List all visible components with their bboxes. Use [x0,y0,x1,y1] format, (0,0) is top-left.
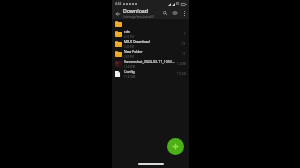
button[interactable]: MIUI Download [112,39,189,49]
staticText: 12:04 PM [124,65,136,69]
staticText: 4:52 [115,2,122,6]
staticText: 19 [182,42,186,46]
button[interactable]: Config [112,69,189,79]
staticText: 2:05 PM [124,55,134,59]
staticText: 3 [184,32,186,36]
button[interactable]: Back [112,8,123,19]
button[interactable]: Change view [170,8,180,18]
staticText: 11:47 AM [124,75,136,79]
staticText: 12 [182,52,186,56]
staticText: Screenshot_2024-03-11_105301.png [124,59,176,64]
staticText: Download [123,7,149,14]
button[interactable]: Add [167,138,184,155]
staticText: New Folder [124,49,143,54]
staticText: cdn [124,29,130,34]
button[interactable]: Screenshot_2024-03-11_105301.png [112,59,189,69]
button[interactable]: New Folder [112,49,189,59]
button[interactable] [112,19,189,29]
button[interactable]: Download [123,7,160,19]
staticText: 112 KB [177,72,186,76]
staticText: 1.4 MB [177,62,186,66]
button[interactable]: Search [160,8,170,18]
staticText: MIUI Download [124,39,150,44]
button[interactable]: More options [180,9,189,18]
staticText: Config [124,69,135,74]
staticText: 3:40 PM [124,45,134,49]
staticText: 81 [176,2,180,6]
staticText: 4:52 PM [124,35,134,39]
staticText: /storage/emulated/0 [123,15,155,19]
button[interactable]: cdn [112,29,189,39]
